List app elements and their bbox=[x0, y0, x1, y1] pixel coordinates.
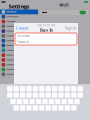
button[interactable]: Sign In bbox=[65, 25, 76, 31]
staticText: Wi-Fi bbox=[59, 2, 68, 8]
staticText: Cancel bbox=[16, 25, 28, 31]
staticText: Settings bbox=[8, 3, 29, 10]
staticText: Sign In bbox=[65, 25, 76, 31]
staticText: Log in to site bbox=[37, 23, 56, 27]
staticText: Username bbox=[17, 34, 30, 38]
staticText: Sign In bbox=[39, 27, 53, 33]
staticText: Password bbox=[17, 40, 29, 44]
button[interactable]: Cancel bbox=[16, 25, 28, 31]
